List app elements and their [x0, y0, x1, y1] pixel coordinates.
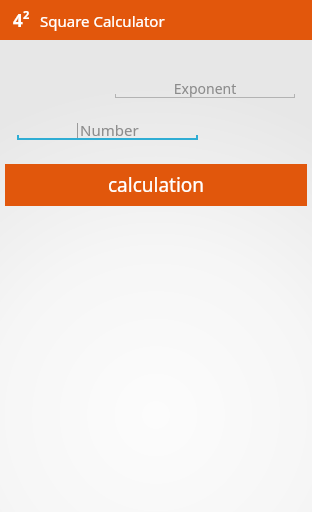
button[interactable]: Number: [0, 120, 312, 145]
button[interactable]: calculation: [5, 164, 307, 206]
button[interactable]: Exponent: [0, 79, 312, 104]
staticText: Square Calculator: [40, 11, 165, 31]
staticText: 2: [23, 7, 30, 22]
staticText: calculation: [108, 172, 205, 198]
staticText: Exponent: [115, 79, 295, 98]
staticText: 4: [13, 9, 23, 32]
staticText: Number: [80, 120, 139, 140]
